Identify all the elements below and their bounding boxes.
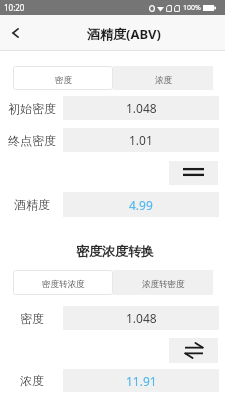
button[interactable]: Calculate bbox=[169, 161, 218, 185]
staticText: 密度浓度转换 bbox=[76, 243, 154, 259]
staticText: 1.048 bbox=[126, 100, 157, 116]
button[interactable]: 4.99 bbox=[63, 192, 219, 217]
staticText: 100% bbox=[183, 3, 201, 13]
staticText: 密度 bbox=[20, 311, 44, 326]
staticText: 1.01 bbox=[129, 132, 153, 148]
staticText: 浓度 bbox=[20, 373, 44, 388]
button[interactable]: 密度转浓度 bbox=[13, 270, 113, 295]
button[interactable]: 1.048 bbox=[63, 96, 219, 120]
button[interactable]: 密度 bbox=[13, 66, 113, 90]
button[interactable]: 1.01 bbox=[63, 128, 219, 152]
staticText: 酒精度 bbox=[14, 197, 50, 212]
staticText: 4.99 bbox=[129, 197, 153, 213]
staticText: 1.048 bbox=[126, 310, 157, 326]
staticText: 酒精度(ABV) bbox=[87, 25, 161, 43]
staticText: 初始密度 bbox=[8, 101, 56, 116]
staticText: 11.91 bbox=[126, 373, 157, 389]
staticText: 终点密度 bbox=[8, 133, 56, 148]
button[interactable]: 浓度 bbox=[113, 66, 213, 90]
button[interactable]: 1.048 bbox=[63, 306, 219, 330]
staticText: 浓度转密度 bbox=[142, 279, 185, 290]
staticText: 浓度 bbox=[155, 75, 172, 86]
staticText: 10:20 bbox=[4, 2, 25, 13]
button[interactable]: Back bbox=[0, 15, 30, 51]
button[interactable]: 浓度转密度 bbox=[113, 270, 213, 295]
button[interactable]: 11.91 bbox=[63, 369, 219, 392]
staticText: 密度转浓度 bbox=[42, 279, 85, 290]
button[interactable]: Swap bbox=[169, 338, 218, 363]
staticText: 密度 bbox=[55, 75, 72, 86]
